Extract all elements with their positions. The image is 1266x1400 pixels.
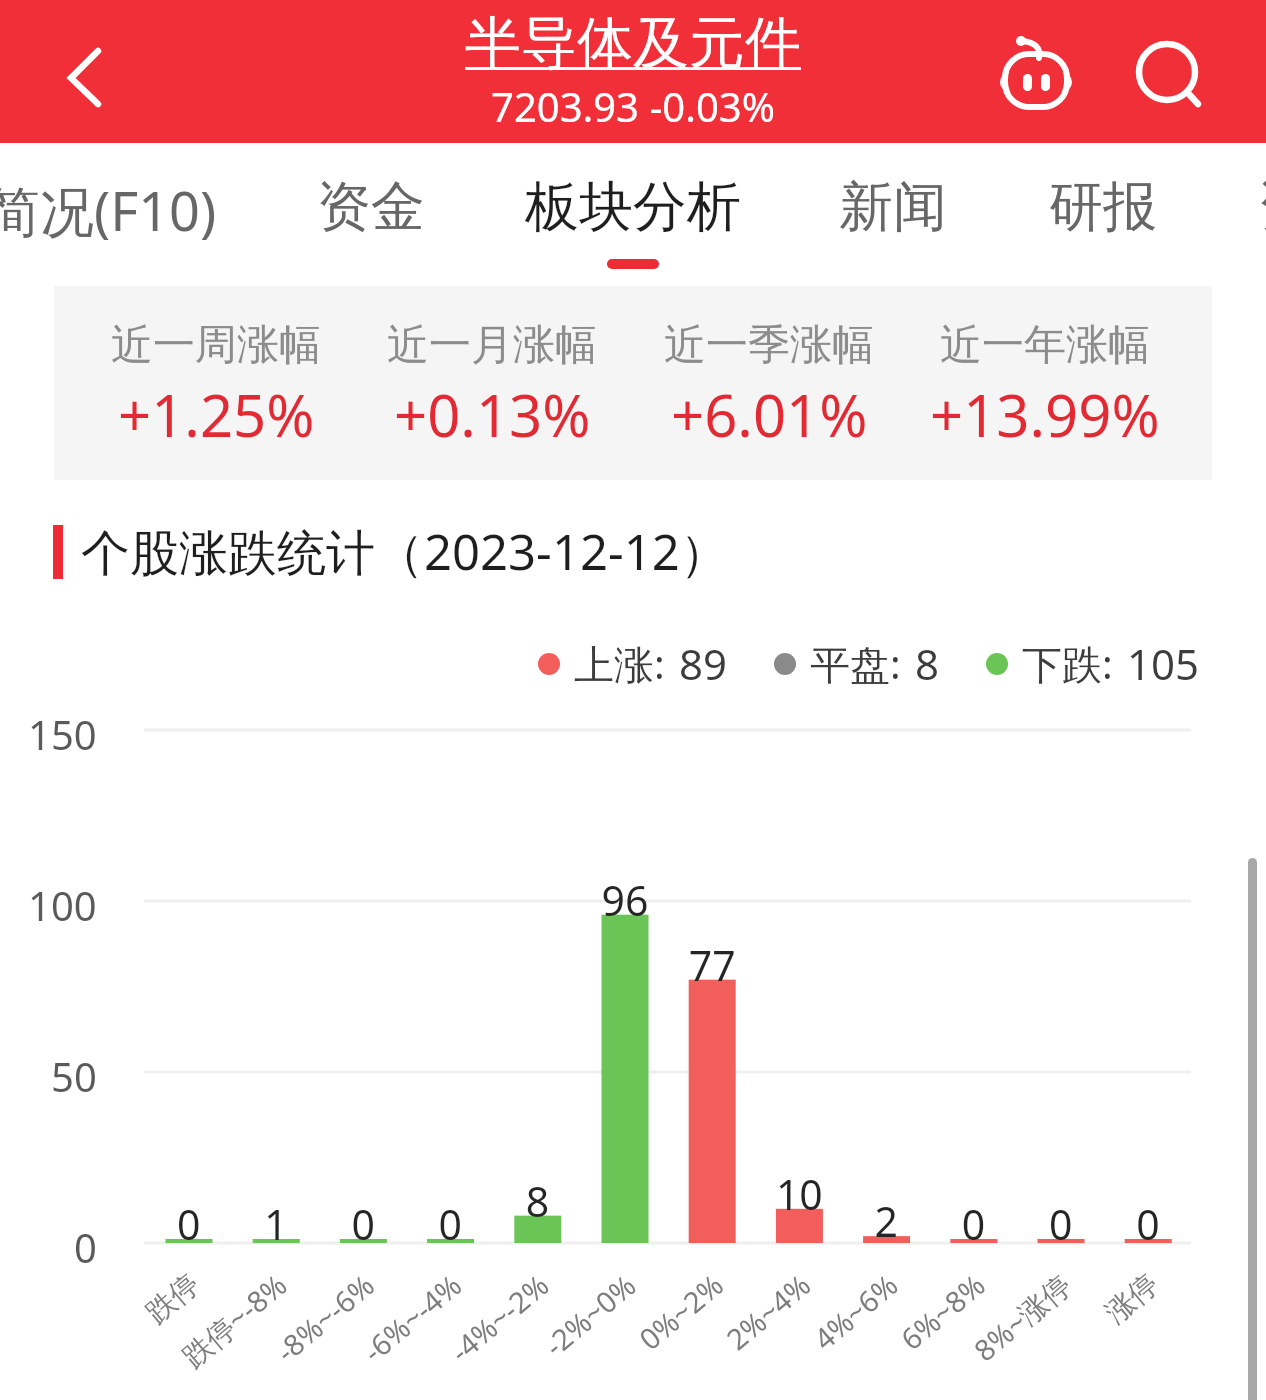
staticText: 近一周涨幅 (111, 319, 321, 372)
staticText: 上涨: (574, 636, 665, 691)
button[interactable]: 近一周涨幅 (56, 286, 376, 480)
staticText: 近一月涨幅 (387, 319, 597, 372)
button[interactable]: 下跌: (986, 635, 1200, 692)
staticText: 8 (915, 635, 940, 692)
staticText: 资 (1258, 173, 1266, 241)
staticText: 近一年涨幅 (940, 319, 1150, 372)
button[interactable]: 近一年涨幅 (885, 286, 1205, 480)
button[interactable]: 新闻 (839, 173, 947, 259)
staticText: 89 (679, 635, 728, 692)
staticText: 研报 (1049, 173, 1157, 241)
staticText: 半导体及元件 (465, 8, 801, 79)
button[interactable]: 研报 (1049, 173, 1157, 259)
staticText: 7203.93 -0.03% (491, 79, 775, 133)
button[interactable]: 近一季涨幅 (609, 286, 929, 480)
staticText: 个股涨跌统计（2023-12-12） (81, 518, 729, 585)
button[interactable]: 平盘: (774, 635, 940, 692)
button[interactable]: 板块分析 (525, 173, 741, 269)
staticText: 新闻 (839, 173, 947, 241)
staticText: +13.99% (930, 375, 1160, 454)
button[interactable]: AI assistant (986, 26, 1086, 126)
staticText: 资金 (317, 173, 425, 241)
button[interactable]: 资金 (317, 173, 425, 259)
button[interactable]: 近一月涨幅 (332, 286, 652, 480)
staticText: 105 (1127, 635, 1200, 692)
staticText: 平盘: (810, 636, 901, 691)
button[interactable]: 资 (1258, 173, 1266, 259)
button[interactable]: 简况(F10) (0, 173, 217, 265)
staticText: 板块分析 (525, 173, 741, 241)
staticText: +0.13% (394, 375, 591, 454)
button[interactable]: Back (38, 30, 130, 122)
staticText: 下跌: (1022, 636, 1113, 691)
staticText: +1.25% (118, 375, 315, 454)
button[interactable]: 上涨: (538, 635, 728, 692)
button[interactable]: Search (1117, 22, 1217, 122)
staticText: 近一季涨幅 (664, 319, 874, 372)
staticText: +6.01% (671, 375, 868, 454)
staticText: 简况(F10) (0, 173, 217, 247)
